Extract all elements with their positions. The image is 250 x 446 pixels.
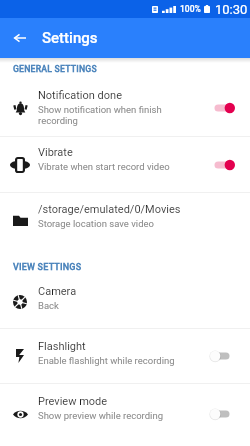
staticText: Show notification when finish recording (38, 104, 169, 126)
button[interactable]: Back (2, 20, 38, 56)
staticText: Flashlight (38, 340, 86, 353)
staticText: Camera (38, 285, 77, 298)
button[interactable]: Camera (0, 276, 250, 328)
button[interactable]: Toggle Vibrate (203, 154, 241, 176)
button[interactable]: Toggle Preview mode (203, 403, 241, 425)
staticText: Back (38, 300, 59, 311)
staticText: /storage/emulated/0/Movies (38, 203, 181, 216)
staticText: 10:30 (215, 2, 248, 17)
staticText: Storage location save video (38, 218, 154, 229)
staticText: Vibrate (38, 146, 73, 159)
button[interactable]: Vibrate (0, 137, 250, 192)
button[interactable]: /storage/emulated/0/Movies (0, 193, 250, 248)
staticText: Vibrate when start record video (38, 161, 170, 172)
staticText: Preview mode (38, 395, 108, 408)
button[interactable]: Preview mode (0, 384, 250, 444)
staticText: Settings (42, 29, 98, 47)
staticText: 100% (180, 4, 201, 14)
staticText: VIEW SETTINGS (13, 262, 82, 273)
button[interactable]: Toggle Notification done (203, 97, 241, 119)
button[interactable]: Notification done (0, 80, 250, 136)
staticText: Show preview while recording (38, 410, 163, 421)
staticText: GENERAL SETTINGS (13, 64, 97, 74)
button[interactable]: Flashlight (0, 329, 250, 383)
button[interactable]: Toggle Flashlight (203, 345, 241, 367)
staticText: Notification done (38, 89, 122, 102)
staticText: Enable flashlight while recording (38, 355, 175, 366)
